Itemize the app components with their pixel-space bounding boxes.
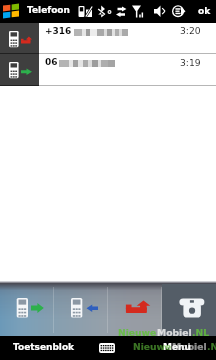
button[interactable]: +316 (0, 23, 216, 53)
staticText: Menu (163, 342, 191, 352)
staticText: Nieuwe (133, 341, 172, 352)
button[interactable]: All calls (162, 279, 216, 336)
button[interactable]: Missed calls (108, 279, 162, 336)
staticText: 3:20 (180, 25, 201, 36)
button[interactable]: Toetsenblok (0, 336, 95, 360)
button[interactable]: Incoming calls (54, 279, 108, 336)
staticText: Toetsenblok (13, 342, 75, 352)
staticText: Mobiel (157, 327, 192, 338)
staticText: Nieuwe (118, 327, 157, 338)
staticText: +316 (45, 26, 72, 36)
staticText: .NL (192, 327, 210, 338)
staticText: Mobiel (172, 341, 207, 352)
button[interactable]: Outgoing calls (0, 279, 54, 336)
staticText: ok (198, 6, 211, 16)
staticText: 3:19 (180, 57, 201, 68)
button[interactable]: Menu (150, 336, 216, 360)
button[interactable]: 06 (0, 54, 216, 85)
staticText: 06 (45, 57, 58, 67)
other: Keyboard (99, 343, 115, 353)
staticText: .NL (207, 341, 216, 352)
staticText: Telefoon (27, 5, 70, 15)
